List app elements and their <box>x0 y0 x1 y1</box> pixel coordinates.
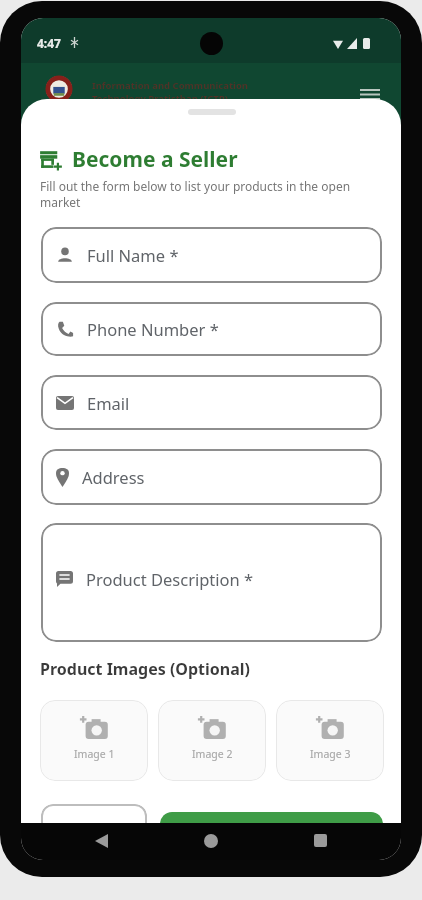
staticText: Phone Number * <box>87 318 219 340</box>
button[interactable]: Full Name * <box>41 227 382 283</box>
staticText: Product Images (Optional) <box>40 658 251 680</box>
button[interactable] <box>198 828 224 854</box>
staticText: Image 2 <box>192 747 233 761</box>
staticText: Image 1 <box>74 747 115 761</box>
button[interactable]: Email <box>41 375 382 430</box>
button[interactable]: Phone Number * <box>41 302 382 356</box>
button[interactable] <box>353 85 387 113</box>
staticText: Image 3 <box>310 747 351 761</box>
button[interactable] <box>308 828 334 854</box>
button[interactable]: Product Description * <box>41 523 382 642</box>
staticText: Fill out the form below to list your pro… <box>40 178 351 210</box>
staticText: Technology Pratisthan (ICTP) <box>92 92 228 105</box>
button[interactable] <box>41 804 147 823</box>
button[interactable]: Image 1 <box>40 700 148 781</box>
button[interactable] <box>160 812 383 823</box>
button[interactable]: Address <box>41 449 382 505</box>
staticText: 4:47 <box>37 35 61 51</box>
button[interactable] <box>89 828 115 854</box>
staticText: Email <box>87 392 130 414</box>
staticText: Become a Seller <box>72 145 238 174</box>
staticText: Full Name * <box>87 244 179 266</box>
staticText: Address <box>82 466 145 488</box>
button[interactable]: Image 2 <box>158 700 266 781</box>
staticText: Information and Communication <box>92 79 248 92</box>
button[interactable]: Image 3 <box>276 700 384 781</box>
staticText: Product Description * <box>86 568 254 590</box>
